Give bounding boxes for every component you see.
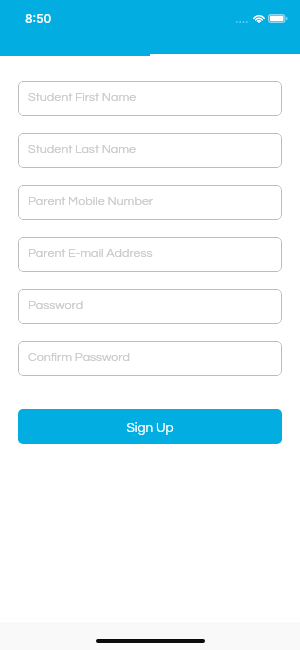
button[interactable]: Parent E-mail Address <box>18 237 282 272</box>
button[interactable]: Sign Up <box>150 28 300 56</box>
other: Battery <box>268 14 288 23</box>
button[interactable]: Confirm Password <box>18 341 282 376</box>
staticText: Student First Name <box>28 91 137 104</box>
staticText: Student Last Name <box>28 143 137 156</box>
staticText: Parent Mobile Number <box>28 195 154 208</box>
staticText: Confirm Password <box>28 351 130 364</box>
staticText: Password <box>28 299 84 312</box>
button[interactable]: Parent Mobile Number <box>18 185 282 220</box>
button[interactable]: Student Last Name <box>18 133 282 168</box>
other: Wi-Fi <box>252 14 266 23</box>
staticText: Parent E-mail Address <box>28 247 153 260</box>
other: Cellular signal <box>235 19 249 25</box>
button[interactable]: Student First Name <box>18 81 282 116</box>
staticText: Sign Up <box>126 421 174 435</box>
staticText: 8:50 <box>25 11 52 26</box>
button[interactable]: Sign Up <box>18 409 282 444</box>
button[interactable]: Password <box>18 289 282 324</box>
